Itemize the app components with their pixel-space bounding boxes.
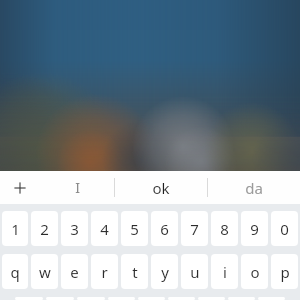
button[interactable]: p: [271, 254, 298, 289]
staticText: t: [132, 262, 138, 282]
button[interactable]: i: [211, 254, 238, 289]
staticText: i: [223, 262, 227, 282]
staticText: da: [245, 178, 263, 198]
button[interactable]: I: [40, 171, 114, 204]
staticText: 5: [130, 219, 139, 239]
staticText: 7: [190, 219, 199, 239]
staticText: o: [250, 262, 260, 282]
button[interactable]: Add: [0, 171, 40, 204]
button[interactable]: t: [121, 254, 148, 289]
button[interactable]: r: [91, 254, 118, 289]
staticText: w: [39, 262, 51, 282]
button[interactable]: 7: [181, 211, 208, 246]
staticText: I: [75, 178, 80, 197]
staticText: e: [70, 262, 79, 282]
button[interactable]: 1: [2, 211, 28, 246]
staticText: 2: [40, 219, 49, 239]
button[interactable]: 6: [151, 211, 178, 246]
staticText: 9: [250, 219, 259, 239]
staticText: 6: [160, 219, 169, 239]
button[interactable]: 5: [121, 211, 148, 246]
button[interactable]: 8: [211, 211, 238, 246]
staticText: 3: [70, 219, 79, 239]
button[interactable]: 2: [31, 211, 58, 246]
button[interactable]: 9: [241, 211, 268, 246]
staticText: r: [101, 262, 108, 282]
staticText: ok: [152, 178, 170, 198]
staticText: 8: [220, 219, 229, 239]
staticText: 1: [11, 219, 20, 239]
button[interactable]: w: [31, 254, 58, 289]
button[interactable]: 4: [91, 211, 118, 246]
button[interactable]: da: [208, 171, 300, 204]
staticText: 0: [280, 219, 289, 239]
staticText: u: [190, 262, 200, 282]
button[interactable]: ok: [115, 171, 207, 204]
button[interactable]: q: [2, 254, 28, 289]
button[interactable]: 3: [61, 211, 88, 246]
staticText: p: [280, 262, 290, 282]
button[interactable]: y: [151, 254, 178, 289]
staticText: 4: [100, 219, 109, 239]
button[interactable]: o: [241, 254, 268, 289]
staticText: q: [10, 262, 20, 282]
button[interactable]: 0: [271, 211, 298, 246]
button[interactable]: u: [181, 254, 208, 289]
staticText: y: [161, 262, 169, 282]
button[interactable]: e: [61, 254, 88, 289]
